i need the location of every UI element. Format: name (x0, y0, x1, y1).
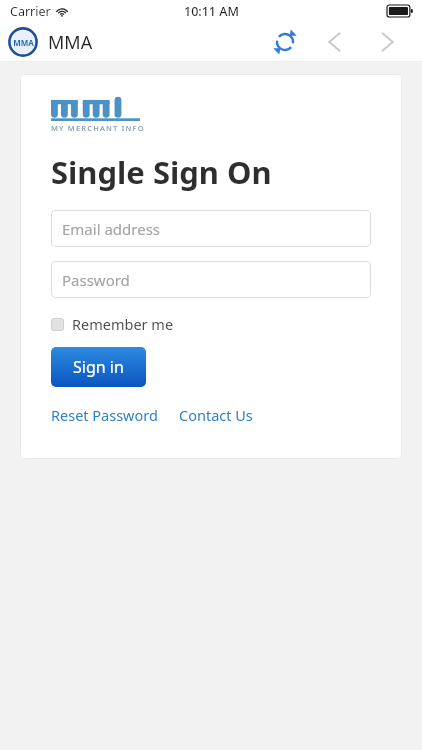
button[interactable]: Refresh (264, 22, 306, 62)
staticText: Sign in (73, 356, 124, 378)
button[interactable]: Sign in (51, 347, 146, 387)
staticText: MY MERCHANT INFO (51, 123, 145, 133)
button[interactable]: Back (314, 22, 356, 62)
staticText: Remember me (72, 314, 174, 334)
staticText: Carrier (10, 3, 51, 20)
button[interactable]: Reset Password (51, 405, 158, 425)
staticText: MMA (48, 30, 93, 55)
staticText: Email address (62, 219, 161, 239)
staticText: Reset Password (51, 405, 158, 425)
staticText: Single Sign On (51, 151, 272, 193)
button[interactable]: Email address (51, 210, 371, 247)
button[interactable]: Password (51, 261, 371, 298)
staticText: Contact Us (179, 405, 253, 425)
button[interactable]: Forward (366, 22, 408, 62)
staticText: 10:11 AM (184, 3, 239, 20)
staticText: Password (62, 270, 130, 290)
button[interactable]: Contact Us (179, 405, 253, 425)
staticText: MMA (13, 37, 34, 48)
button[interactable]: Remember me (51, 314, 174, 334)
